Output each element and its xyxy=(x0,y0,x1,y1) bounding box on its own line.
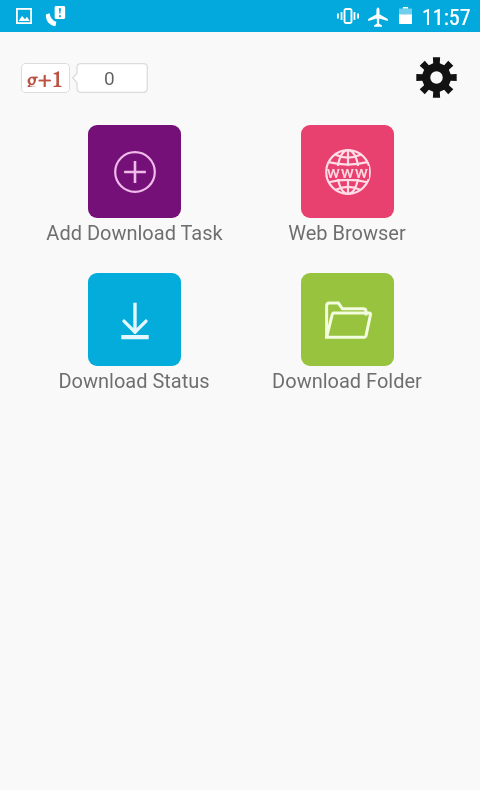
button[interactable]: Add Download Task xyxy=(24,125,244,244)
button[interactable]: Download Status xyxy=(24,273,244,392)
staticText: g+1 xyxy=(27,63,64,87)
button[interactable]: 0 xyxy=(72,63,148,93)
button[interactable]: Settings xyxy=(410,51,462,103)
staticText: www xyxy=(327,162,369,182)
staticText: 0 xyxy=(104,67,115,89)
staticText: Add Download Task xyxy=(46,221,223,244)
staticText: 11:57 xyxy=(422,5,471,31)
button[interactable]: Download Folder xyxy=(237,273,457,392)
button[interactable]: g+1 xyxy=(21,63,70,93)
button[interactable]: www xyxy=(237,125,457,244)
staticText: Download Folder xyxy=(272,369,422,392)
staticText: Web Browser xyxy=(288,221,406,244)
staticText: Download Status xyxy=(58,369,210,392)
